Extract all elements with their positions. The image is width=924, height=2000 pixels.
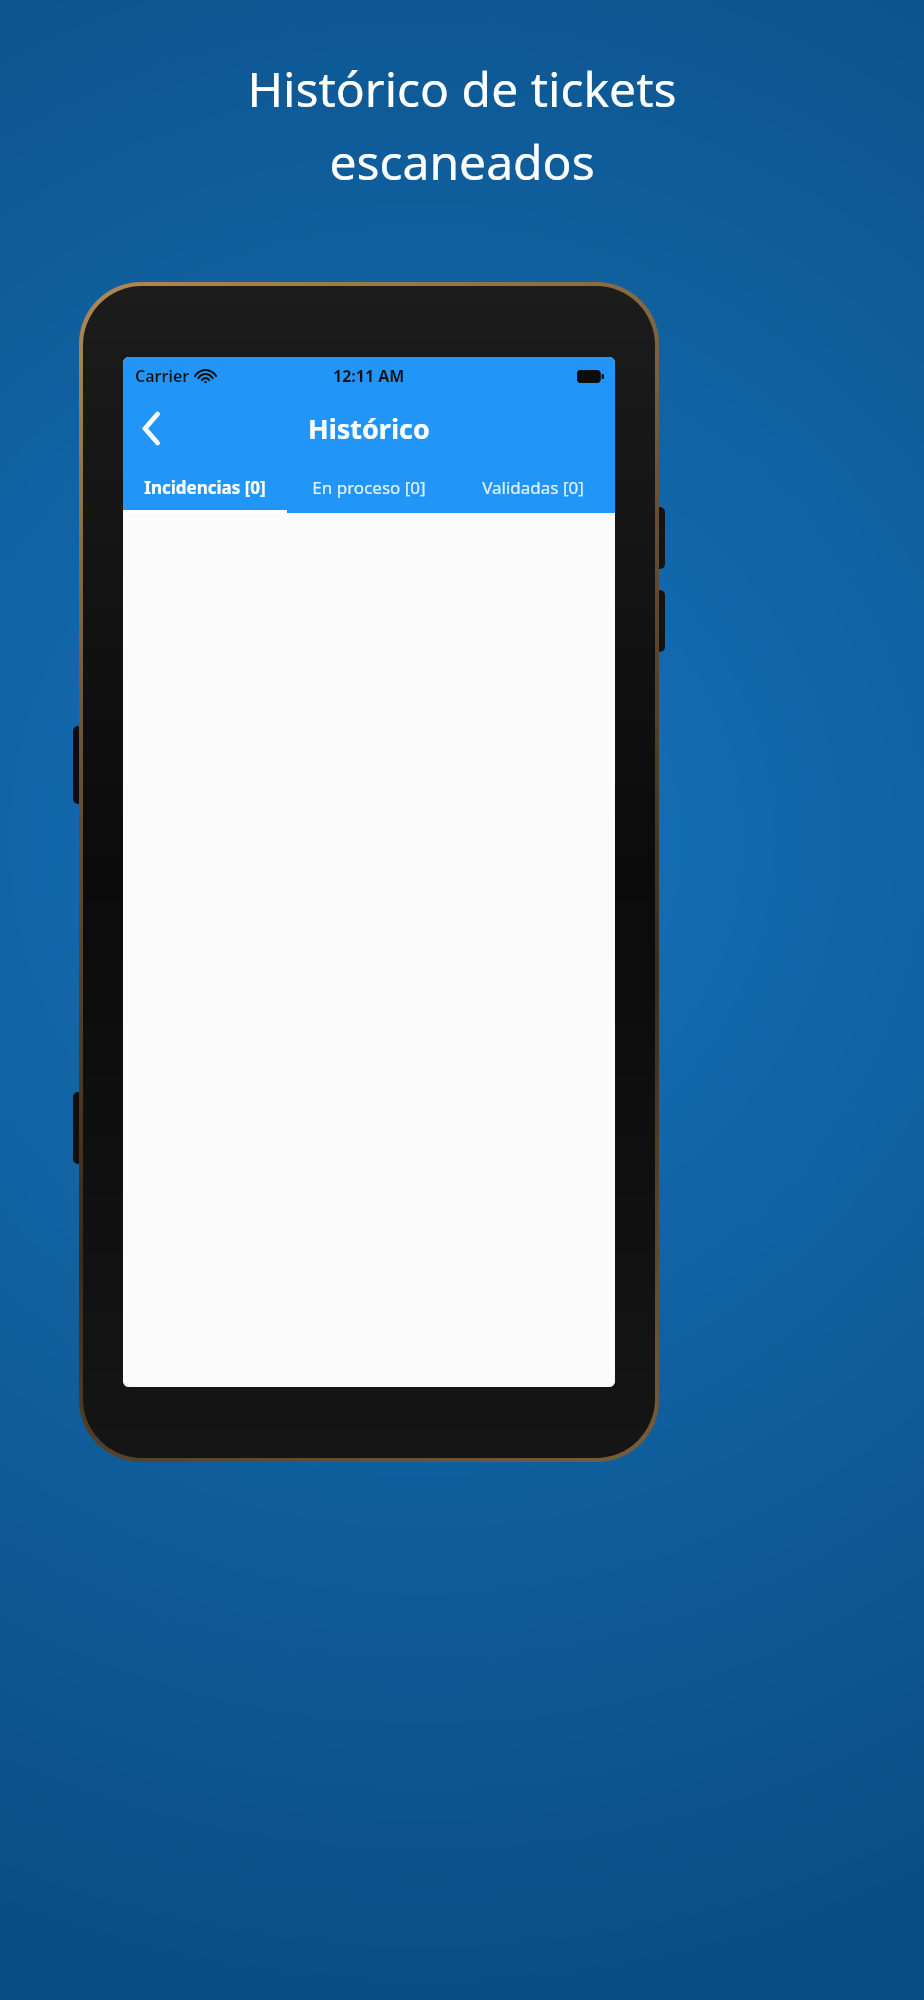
button[interactable]: Incidencias [0]	[123, 461, 287, 513]
button[interactable]: En proceso [0]	[287, 461, 451, 513]
staticText: Histórico	[308, 410, 430, 447]
staticText: Validadas [0]	[482, 476, 584, 499]
staticText: Carrier	[135, 365, 190, 387]
button[interactable]: Back	[123, 400, 179, 456]
staticText: escaneados	[60, 129, 864, 194]
staticText: Histórico de tickets	[60, 56, 864, 121]
button[interactable]: Validadas [0]	[451, 461, 615, 513]
staticText: Incidencias [0]	[144, 476, 266, 499]
staticText: En proceso [0]	[312, 476, 426, 499]
staticText: 12:11 AM	[333, 365, 405, 387]
